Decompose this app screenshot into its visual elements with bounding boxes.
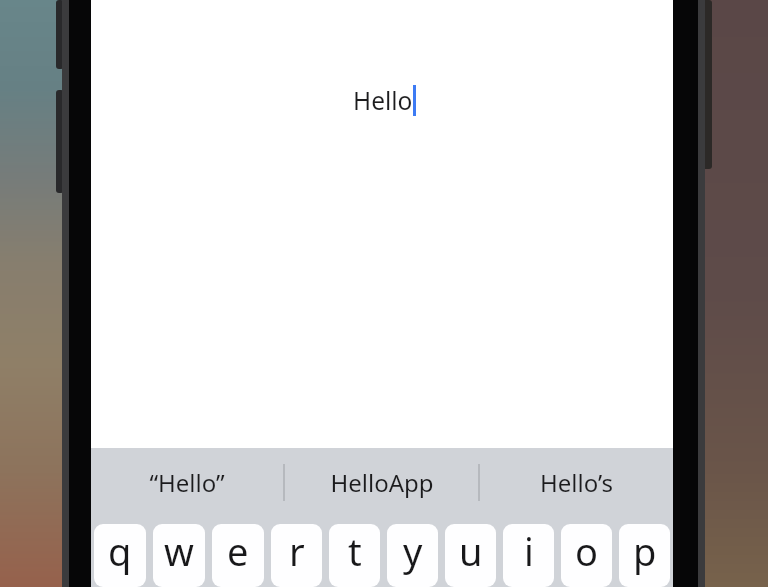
staticText: t [348, 525, 362, 577]
staticText: p [633, 525, 657, 577]
staticText: r [289, 525, 305, 577]
button[interactable]: i [503, 524, 554, 587]
button[interactable]: o [561, 524, 612, 587]
staticText: i [524, 525, 534, 577]
staticText: u [459, 525, 483, 577]
staticText: o [575, 525, 598, 577]
button[interactable]: e [212, 524, 264, 587]
staticText: w [164, 525, 194, 577]
button[interactable]: t [329, 524, 380, 587]
button[interactable]: q [94, 524, 146, 587]
staticText: Hello’s [540, 466, 613, 499]
button[interactable]: HelloApp [285, 448, 478, 517]
button[interactable]: u [445, 524, 496, 587]
staticText: q [108, 525, 132, 577]
staticText: e [227, 525, 249, 577]
button[interactable]: “Hello” [91, 448, 283, 517]
staticText: “Hello” [149, 466, 225, 499]
staticText: HelloApp [330, 466, 434, 499]
button[interactable]: r [271, 524, 322, 587]
staticText: Hello [353, 84, 413, 117]
button[interactable]: y [387, 524, 438, 587]
button[interactable]: w [153, 524, 205, 587]
button[interactable]: p [619, 524, 670, 587]
button[interactable]: Hello’s [480, 448, 673, 517]
staticText: y [403, 525, 423, 577]
